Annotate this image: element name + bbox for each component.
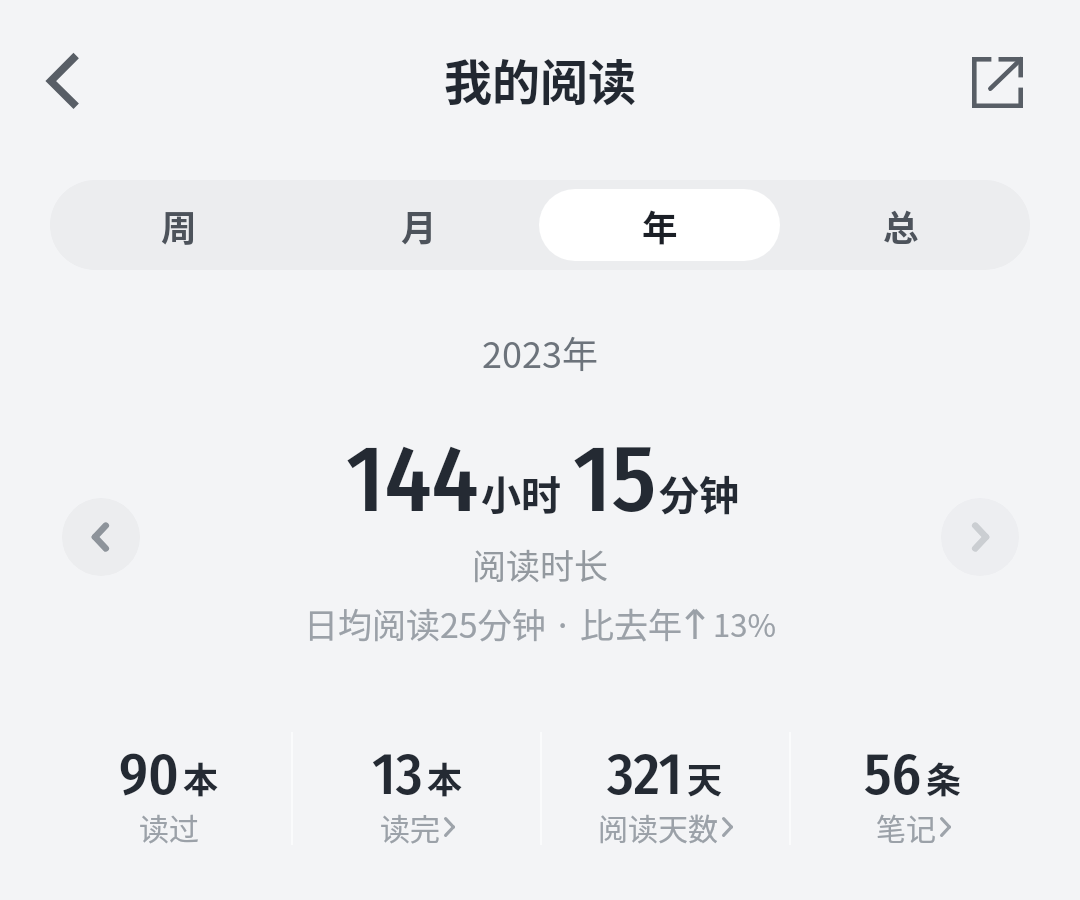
button[interactable]: 周 xyxy=(59,189,299,261)
button[interactable]: 月 xyxy=(299,189,539,261)
staticText: 周 xyxy=(161,200,197,251)
staticText: 56 xyxy=(864,740,922,810)
staticText: 阅读天数 xyxy=(598,805,718,848)
button[interactable]: Back xyxy=(21,40,101,120)
staticText: 阅读时长 xyxy=(472,540,608,589)
staticText: 144 xyxy=(346,423,479,536)
button[interactable]: Next period xyxy=(941,498,1019,576)
button[interactable]: 13 xyxy=(293,740,541,865)
staticText: 90 xyxy=(119,740,179,810)
staticText: 13 xyxy=(372,740,423,810)
staticText: 分钟 xyxy=(659,464,739,522)
button[interactable]: Previous period xyxy=(62,498,140,576)
button[interactable]: 年 xyxy=(539,189,780,261)
staticText: 天 xyxy=(687,752,723,803)
staticText: 总 xyxy=(883,200,919,251)
staticText: 2023年 xyxy=(482,326,598,378)
button[interactable]: 90 xyxy=(45,740,293,865)
staticText: 13% xyxy=(713,601,776,646)
staticText: 读完 xyxy=(380,805,440,848)
button[interactable]: 总 xyxy=(780,189,1021,261)
staticText: 本 xyxy=(427,752,463,803)
staticText: 321 xyxy=(607,740,683,810)
button[interactable]: Share xyxy=(957,42,1037,122)
staticText: 小时 xyxy=(481,464,561,522)
button[interactable]: 321 xyxy=(541,740,789,865)
staticText: 15 xyxy=(573,423,657,536)
button[interactable]: 56 xyxy=(789,740,1037,865)
staticText: 读过 xyxy=(139,805,199,848)
staticText: 月 xyxy=(401,200,437,251)
staticText: 条 xyxy=(926,752,962,803)
staticText: 日均阅读25分钟 · 比去年 xyxy=(304,599,683,648)
staticText: 笔记 xyxy=(876,805,936,848)
staticText: 年 xyxy=(642,200,678,251)
staticText: 本 xyxy=(183,752,219,803)
staticText: 我的阅读 xyxy=(444,44,637,114)
